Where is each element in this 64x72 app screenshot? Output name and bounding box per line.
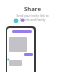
staticText: Share bbox=[24, 5, 41, 13]
staticText: Send your invite link to friends and fam… bbox=[16, 14, 49, 22]
button[interactable] bbox=[12, 30, 32, 33]
